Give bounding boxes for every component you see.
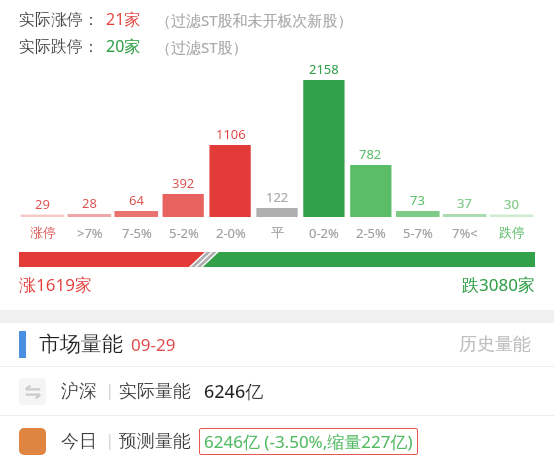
staticText: 37 (457, 194, 472, 212)
staticText: 跌停 (499, 224, 525, 240)
staticText: （过滤ST股和未开板次新股） (156, 10, 353, 30)
staticText: 6246亿 (204, 379, 264, 404)
staticText: 392 (172, 174, 195, 192)
staticText: 122 (266, 188, 289, 206)
staticText: 21家 (106, 8, 141, 30)
staticText: 28 (82, 194, 97, 212)
staticText: >7% (77, 224, 103, 242)
staticText: 跌3080家 (462, 273, 535, 296)
staticText: 涨1619家 (19, 273, 92, 296)
staticText: 6246亿 (-3.50%,缩量227亿) (204, 430, 413, 453)
button[interactable]: 历史量能 (455, 329, 535, 360)
staticText: 30 (504, 195, 519, 213)
staticText: （过滤ST股） (156, 37, 248, 57)
staticText: 29 (35, 195, 50, 213)
staticText: 涨停 (30, 224, 56, 240)
staticText: 实际涨停： (19, 10, 99, 30)
staticText: 市场量能 (39, 331, 123, 357)
staticText: 5-7% (403, 224, 433, 242)
staticText: 平 (271, 224, 284, 240)
staticText: 2-5% (356, 224, 386, 242)
button[interactable] (0, 252, 554, 270)
staticText: 7%< (452, 224, 478, 242)
staticText: 沪深 (61, 380, 97, 403)
staticText: 782 (359, 145, 382, 163)
button[interactable]: 今日预测量能 (0, 416, 554, 466)
staticText: 实际跌停： (19, 37, 99, 57)
button[interactable]: 沪深切换 (0, 367, 554, 415)
staticText: 7-5% (122, 224, 152, 242)
staticText: 0-2% (309, 224, 339, 242)
staticText: 2-0% (216, 224, 246, 242)
staticText: 09-29 (131, 333, 176, 356)
other: 沪深切换 (19, 378, 46, 405)
staticText: 2158 (309, 60, 339, 78)
staticText: 73 (410, 191, 425, 209)
staticText: ｜ (102, 381, 118, 401)
staticText: 5-2% (169, 224, 199, 242)
staticText: 1106 (216, 125, 246, 143)
staticText: 64 (129, 191, 144, 209)
other: 今日预测量能 (19, 428, 46, 455)
staticText: 实际量能 (119, 380, 191, 403)
staticText: 历史量能 (459, 333, 531, 356)
staticText: 今日 (61, 430, 97, 453)
staticText: ｜ (102, 431, 118, 451)
staticText: 预测量能 (119, 430, 191, 453)
staticText: 20家 (106, 35, 141, 57)
